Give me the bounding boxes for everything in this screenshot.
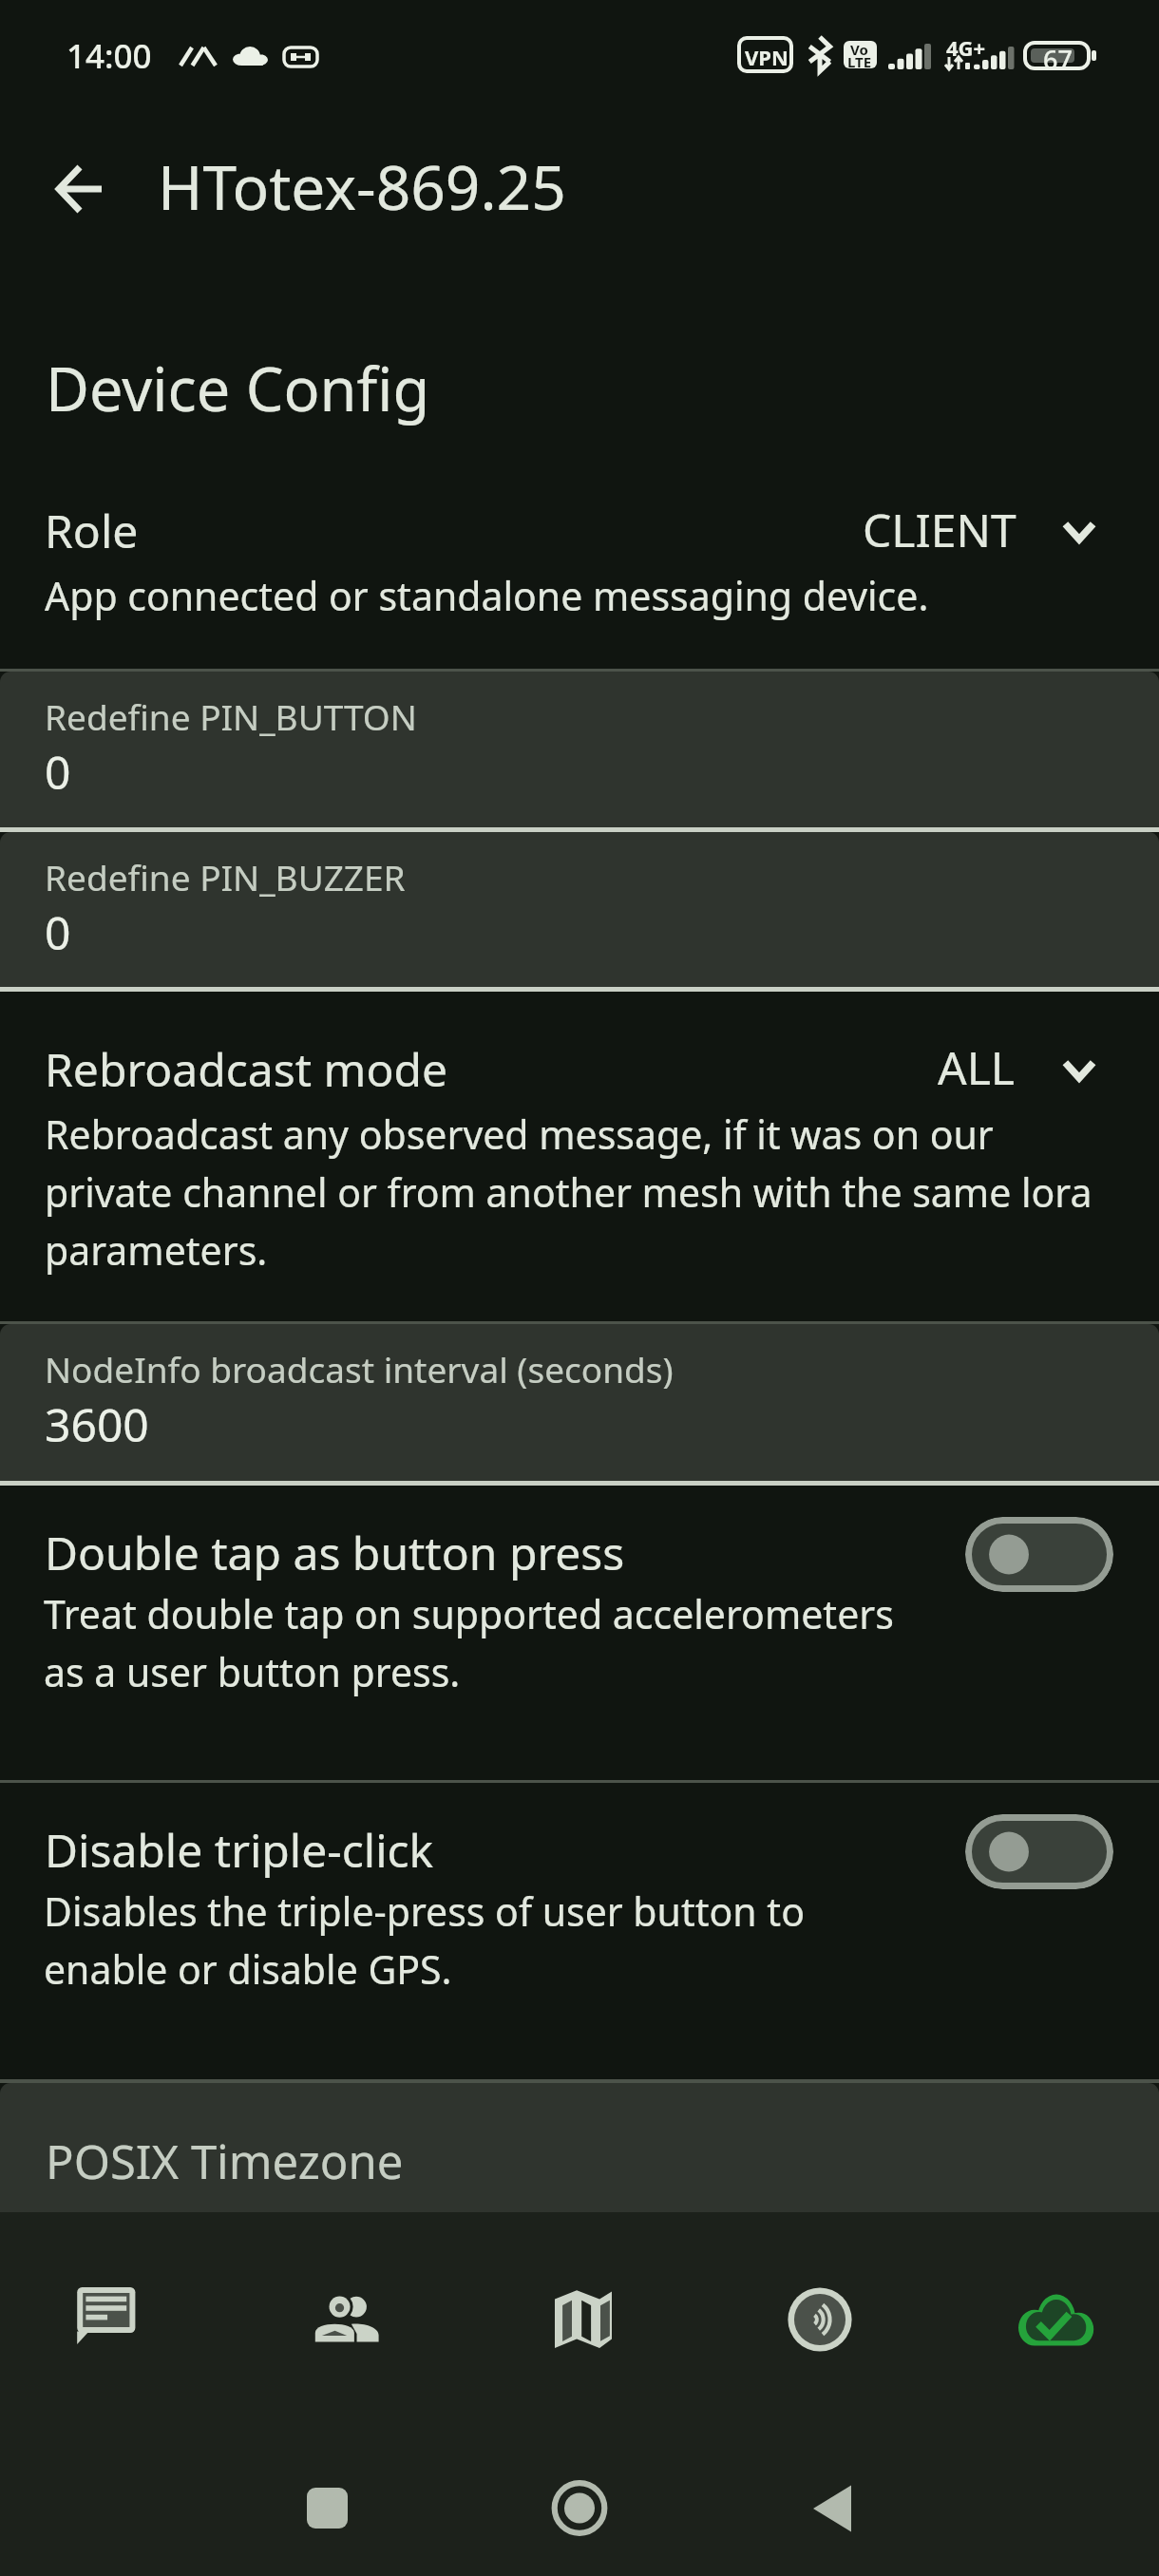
button[interactable]: Messages xyxy=(0,2212,232,2402)
staticText: Disables the triple-press of user button… xyxy=(44,1881,805,1997)
staticText: Vo xyxy=(850,40,868,59)
staticText: 0 xyxy=(45,741,71,803)
staticText: Device Config xyxy=(46,348,430,429)
button[interactable]: Recent apps xyxy=(228,2402,427,2576)
staticText: Disable triple-click xyxy=(45,1819,434,1881)
button[interactable]: Disable triple-click xyxy=(0,1783,1159,2079)
button[interactable]: Home xyxy=(480,2402,679,2576)
button[interactable]: Back xyxy=(44,153,116,225)
staticText: 14:00 xyxy=(66,33,152,79)
button[interactable]: Map xyxy=(464,2212,695,2402)
button[interactable]: POSIX Timezone xyxy=(0,2083,1159,2212)
staticText: POSIX Timezone xyxy=(46,2130,404,2193)
staticText: Treat double tap on supported accelerome… xyxy=(44,1583,894,1699)
button[interactable]: Rebroadcast mode xyxy=(0,995,1159,1316)
staticText: 67 xyxy=(1043,42,1073,77)
button[interactable]: Role xyxy=(0,475,1159,655)
staticText: VPN xyxy=(745,43,788,71)
staticText: 0 xyxy=(45,901,71,963)
staticText: Rebroadcast any observed message, if it … xyxy=(45,1104,1092,1278)
button[interactable]: Redefine PIN_BUTTON xyxy=(0,672,1159,827)
staticText: ALL xyxy=(938,1036,1015,1098)
staticText: App connected or standalone messaging de… xyxy=(45,565,929,623)
button[interactable]: Toggle Double tap as button press xyxy=(965,1517,1113,1592)
button[interactable]: Channels xyxy=(695,2212,927,2402)
staticText: Role xyxy=(45,500,139,561)
staticText: Double tap as button press xyxy=(45,1522,625,1583)
staticText: NodeInfo broadcast interval (seconds) xyxy=(45,1345,674,1392)
staticText: HTotex-869.25 xyxy=(158,145,566,228)
button[interactable]: Contacts xyxy=(232,2212,464,2402)
staticText: Redefine PIN_BUZZER xyxy=(45,853,406,900)
staticText: LTE xyxy=(847,52,872,71)
button[interactable]: HTotex-869.25 xyxy=(137,133,631,247)
button[interactable]: NodeInfo broadcast interval (seconds) xyxy=(0,1324,1159,1481)
button[interactable]: Back xyxy=(732,2402,932,2576)
staticText: Redefine PIN_BUTTON xyxy=(45,692,417,740)
staticText: Rebroadcast mode xyxy=(45,1038,448,1100)
button[interactable]: Redefine PIN_BUZZER xyxy=(0,832,1159,987)
staticText: CLIENT xyxy=(863,499,1016,560)
button[interactable]: Toggle Disable triple-click xyxy=(965,1814,1113,1889)
button[interactable]: Double tap as button press xyxy=(0,1486,1159,1780)
staticText: 3600 xyxy=(45,1393,149,1455)
button[interactable]: Settings xyxy=(927,2212,1159,2402)
staticText: 4G+ xyxy=(946,33,986,62)
